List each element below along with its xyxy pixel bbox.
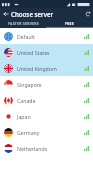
staticText: United Kingdom bbox=[17, 65, 84, 72]
staticText: Germany bbox=[17, 129, 84, 136]
button[interactable]: United States bbox=[0, 44, 93, 60]
staticText: FASTER SERVERS bbox=[8, 21, 39, 26]
staticText: FREE bbox=[65, 21, 74, 26]
staticText: Singapore bbox=[17, 81, 84, 88]
button[interactable]: Default bbox=[0, 28, 93, 44]
button[interactable]: Canada bbox=[0, 92, 93, 108]
button[interactable]: Singapore bbox=[0, 76, 93, 92]
staticText: United States bbox=[17, 49, 84, 56]
button[interactable]: Netherlands bbox=[0, 140, 93, 156]
button[interactable]: FASTER SERVERS bbox=[0, 19, 46, 27]
button[interactable]: Germany bbox=[0, 124, 93, 140]
staticText: Japan bbox=[17, 113, 84, 120]
button[interactable]: Back bbox=[0, 8, 11, 19]
button[interactable]: Refresh bbox=[82, 8, 93, 19]
button[interactable]: United Kingdom bbox=[0, 60, 93, 76]
staticText: Default bbox=[17, 33, 84, 40]
staticText: Choose server bbox=[11, 10, 82, 18]
button[interactable]: Japan bbox=[0, 108, 93, 124]
staticText: Netherlands bbox=[17, 145, 84, 152]
staticText: Canada bbox=[17, 97, 84, 104]
button[interactable]: FREE bbox=[46, 19, 93, 27]
